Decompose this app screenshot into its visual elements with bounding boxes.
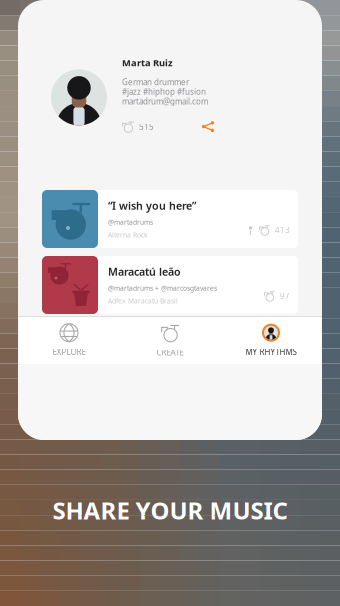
staticText: Alterna Rock — [108, 231, 148, 239]
staticText: 413 — [275, 225, 290, 235]
staticText: Marta Ruiz — [122, 56, 173, 69]
staticText: Maracatú leão — [108, 265, 181, 279]
staticText: 97 — [280, 291, 290, 301]
button[interactable]: 515 — [122, 118, 154, 136]
staticText: Adfex Maracatú Brasil — [108, 297, 178, 305]
staticText: German drummer #jazz #hiphop #fusion mar… — [122, 77, 208, 107]
staticText: @martadrums + @marcosgtavares — [108, 284, 217, 293]
staticText: @martadrums — [108, 218, 153, 227]
staticText: 515 — [139, 121, 154, 132]
staticText: SHARE YOUR MUSIC — [52, 494, 287, 526]
staticText: “I wish you here” — [108, 199, 196, 213]
button[interactable]: EXPLORE — [18, 317, 119, 364]
staticText: MY RHYTHMS — [245, 347, 296, 357]
button[interactable]: Share — [197, 118, 219, 136]
button[interactable]: Maracatú leão — [42, 256, 298, 314]
staticText: CREATE — [156, 347, 183, 358]
button[interactable]: MY RHYTHMS — [220, 317, 321, 364]
button[interactable]: “I wish you here” — [42, 190, 298, 248]
button[interactable]: CREATE — [119, 317, 220, 364]
staticText: EXPLORE — [52, 347, 85, 357]
